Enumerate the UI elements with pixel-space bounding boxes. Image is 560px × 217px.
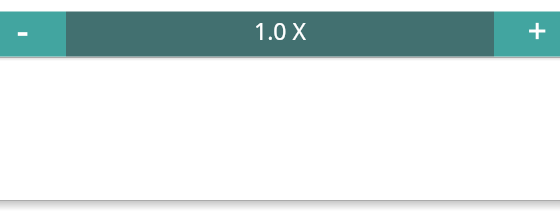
button[interactable]: Decrease playback speed [0,11,66,57]
staticText: 1.0 X [254,15,306,46]
button[interactable]: Increase playback speed [494,11,560,57]
button[interactable]: 1.0 X [66,11,494,57]
